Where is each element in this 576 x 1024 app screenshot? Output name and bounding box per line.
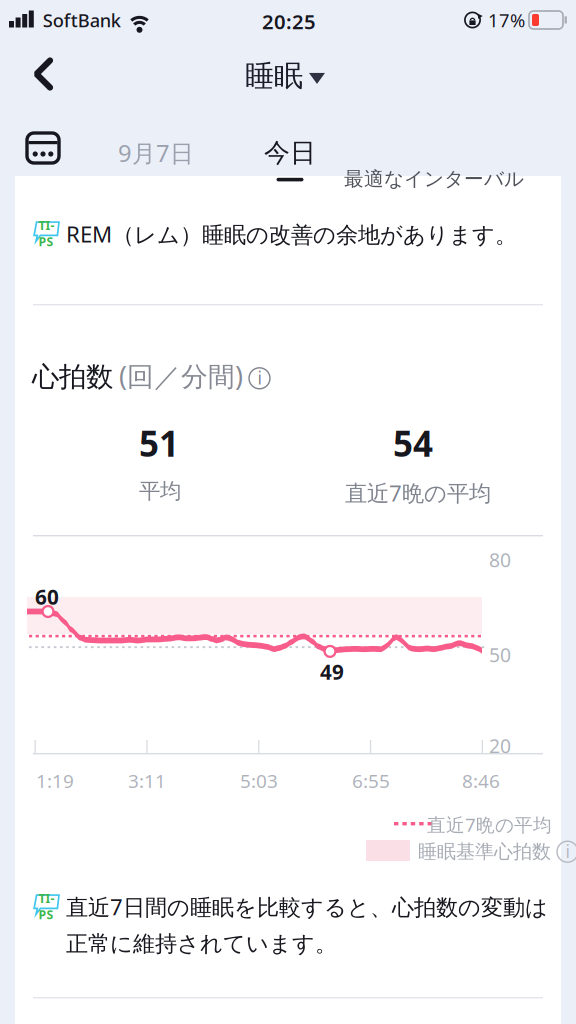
staticText: 心拍数 — [32, 360, 113, 394]
staticText: (回／分間) — [119, 358, 243, 393]
staticText: i — [565, 840, 569, 863]
staticText: 8:46 — [462, 768, 500, 793]
staticText: 80 — [489, 547, 511, 573]
staticText: 54 — [393, 420, 433, 466]
staticText: 17% — [488, 8, 525, 32]
staticText: TIPS — [38, 217, 54, 250]
staticText: 49 — [320, 658, 344, 685]
button[interactable]: 戻る — [16, 48, 68, 100]
staticText: 最適なインターバル — [344, 167, 524, 191]
button[interactable]: 睡眠 — [240, 53, 334, 99]
staticText: 1:19 — [36, 768, 74, 793]
staticText: 60 — [35, 583, 59, 610]
staticText: i — [257, 366, 261, 389]
staticText: SoftBank — [43, 8, 121, 32]
button[interactable]: カレンダー — [18, 124, 68, 172]
staticText: 20 — [489, 733, 511, 759]
staticText: 5:03 — [240, 768, 278, 793]
button[interactable]: 今日 — [253, 128, 327, 181]
button[interactable]: 9月7日 — [108, 128, 204, 177]
staticText: 20:25 — [262, 8, 316, 35]
staticText: 6:55 — [352, 768, 390, 793]
staticText: 直近7晩の平均 — [427, 812, 552, 837]
staticText: 50 — [489, 642, 511, 668]
staticText: 睡眠基準心拍数 — [418, 840, 551, 863]
staticText: REM（レム）睡眠の改善の余地があります。 — [66, 219, 517, 249]
staticText: 3:11 — [128, 768, 166, 793]
staticText: 9月7日 — [118, 137, 194, 168]
staticText: 51 — [139, 420, 179, 466]
staticText: 正常に維持されています。 — [66, 930, 337, 958]
staticText: 睡眠 — [245, 58, 303, 94]
staticText: 直近7晩の平均 — [345, 478, 491, 508]
staticText: 直近7日間の睡眠を比較すると、心拍数の変動は — [66, 892, 548, 921]
staticText: TIPS — [38, 890, 54, 923]
staticText: 平均 — [139, 478, 181, 504]
staticText: 今日 — [264, 137, 316, 169]
